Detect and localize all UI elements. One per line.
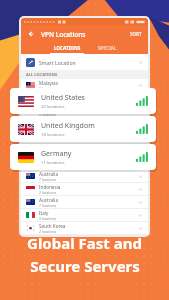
staticText: United States	[39, 119, 68, 125]
staticText: SPECIAL	[98, 45, 117, 51]
staticText: VPN Locations	[41, 30, 86, 39]
button[interactable]: LOCATIONS	[50, 45, 84, 54]
staticText: 11 locations	[39, 151, 59, 156]
staticText: South Korea	[39, 223, 66, 229]
staticText: Italy	[39, 210, 49, 216]
button[interactable]: Malaysia	[21, 79, 148, 91]
button[interactable]: Germany	[21, 144, 148, 156]
staticText: LOCATIONS	[54, 45, 81, 51]
staticText: Australia	[39, 197, 58, 203]
staticText: Germany	[41, 149, 72, 159]
staticText: ALL LOCATIONS	[26, 72, 58, 77]
staticText: 11 locations	[41, 160, 65, 166]
staticText: Netherlands	[39, 106, 66, 112]
button[interactable]: Australia	[21, 196, 148, 208]
staticText: 4 locations	[39, 112, 57, 117]
staticText: United Kingdom	[41, 121, 95, 131]
button[interactable]: South Korea	[21, 222, 148, 234]
button[interactable]: United Kingdom	[10, 116, 156, 142]
staticText: Singapore	[39, 93, 61, 99]
staticText: 7 locations	[39, 203, 57, 208]
staticText: 2 locations	[39, 86, 57, 91]
staticText: Australia	[39, 171, 58, 177]
staticText: Malaysia	[39, 80, 58, 86]
button[interactable]: Germany	[10, 144, 156, 170]
staticText: 7 locations	[39, 177, 57, 182]
staticText: 18 locations	[41, 132, 65, 138]
button[interactable]: Italy	[21, 209, 148, 221]
staticText: United Kingdom	[39, 132, 75, 138]
staticText: 18 locations	[39, 138, 59, 143]
staticText: Global Fast and	[27, 233, 142, 253]
button[interactable]: SPECIAL	[94, 45, 120, 54]
staticText: 20 locations	[39, 125, 59, 130]
button[interactable]: Indonesia	[21, 157, 148, 169]
button[interactable]: SORT	[129, 30, 143, 38]
button[interactable]: United Kingdom	[21, 131, 148, 143]
button[interactable]: United States	[10, 88, 156, 114]
button[interactable]: Back	[26, 29, 36, 39]
staticText: 3 locations	[39, 216, 57, 221]
button[interactable]: Australia	[21, 170, 148, 182]
staticText: 3 locations	[39, 99, 57, 104]
staticText: SORT	[130, 31, 142, 37]
button[interactable]: Indonesia	[21, 183, 148, 195]
button[interactable]: United States	[21, 118, 148, 130]
button[interactable]: Netherlands	[21, 105, 148, 117]
staticText: Smart Location	[39, 59, 76, 66]
button[interactable]: Smart Location	[21, 54, 148, 70]
staticText: Indonesia	[39, 158, 61, 164]
button[interactable]: Singapore	[21, 92, 148, 104]
staticText: Secure Servers	[30, 256, 140, 276]
staticText: 2 locations	[39, 229, 57, 234]
staticText: United States	[41, 93, 85, 103]
staticText: Indonesia	[39, 184, 61, 190]
staticText: 20 locations	[41, 104, 65, 110]
staticText: 2 locations	[39, 190, 57, 195]
